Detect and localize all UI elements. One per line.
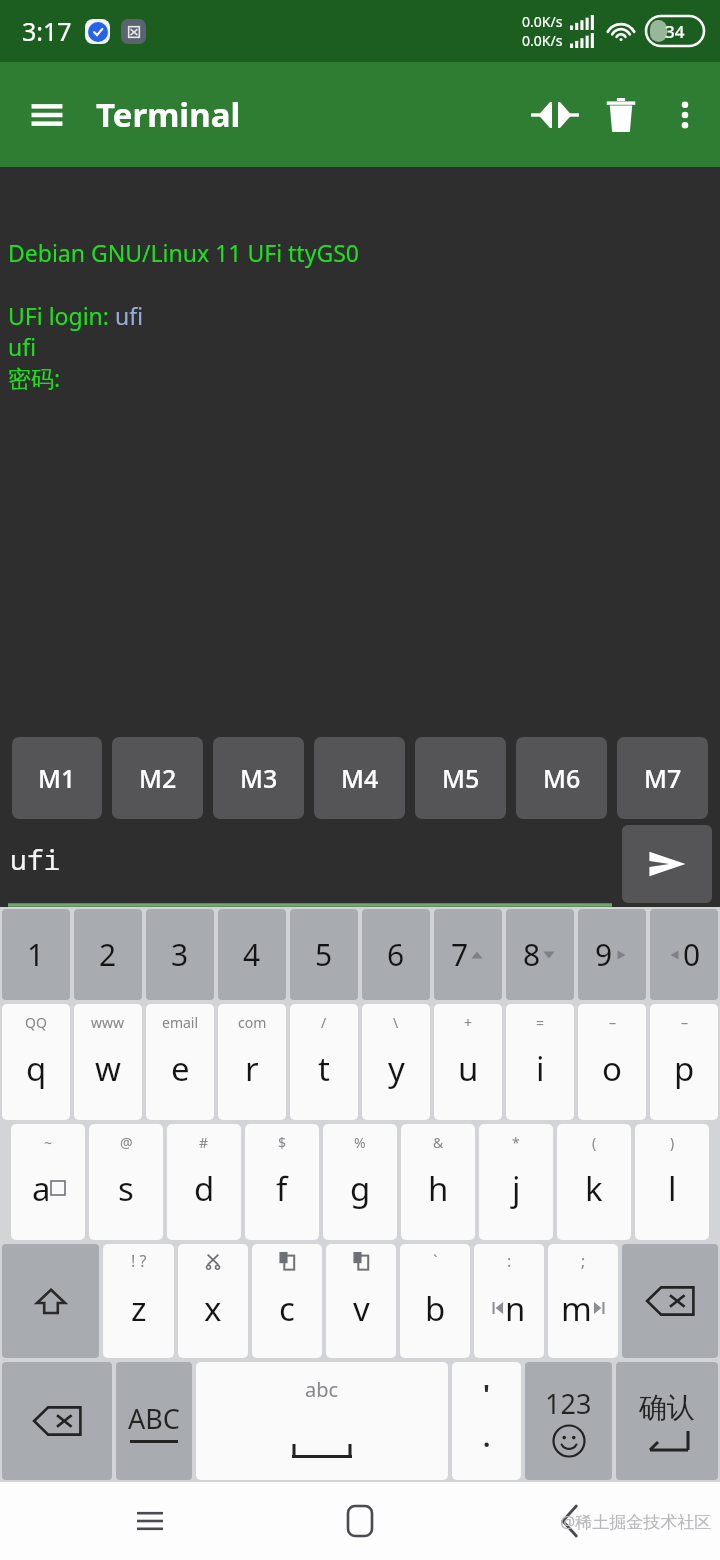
button[interactable]: ! ? <box>103 1244 174 1358</box>
button[interactable]: x <box>178 1244 248 1358</box>
staticText: 7 <box>451 934 469 975</box>
button[interactable]: 3 <box>146 909 214 1000</box>
button[interactable]: More options <box>654 82 716 148</box>
button[interactable]: % <box>323 1124 397 1240</box>
staticText: QQ <box>25 1013 47 1032</box>
button[interactable]: & <box>401 1124 475 1240</box>
button[interactable]: 6 <box>362 909 430 1000</box>
staticText: = <box>536 1013 545 1032</box>
staticText: w <box>95 1046 121 1091</box>
button[interactable]: Home <box>330 1491 390 1551</box>
button[interactable]: www <box>74 1004 142 1120</box>
staticText: o <box>602 1046 622 1091</box>
button[interactable]: : <box>474 1244 544 1358</box>
button[interactable]: ~ <box>11 1124 85 1240</box>
button[interactable]: Shift <box>2 1244 99 1358</box>
button[interactable]: Backspace <box>622 1244 718 1358</box>
button[interactable]: 2 <box>74 909 142 1000</box>
button[interactable]: 8 <box>506 909 574 1000</box>
staticText: com <box>238 1013 267 1032</box>
button[interactable]: M7 <box>617 737 708 819</box>
button[interactable]: – <box>650 1004 718 1120</box>
button[interactable]: 1 <box>2 909 70 1000</box>
button[interactable]: ( <box>557 1124 631 1240</box>
button[interactable]: ABC <box>116 1362 192 1480</box>
button[interactable]: = <box>506 1004 574 1120</box>
button[interactable]: Recents <box>120 1491 180 1551</box>
staticText: n <box>505 1286 526 1331</box>
button[interactable]: c <box>252 1244 322 1358</box>
button[interactable]: Back <box>540 1491 600 1551</box>
button[interactable]: 9 <box>578 909 646 1000</box>
button[interactable]: ' <box>452 1362 521 1480</box>
staticText: ufi <box>8 331 37 362</box>
staticText: + <box>464 1013 473 1032</box>
button[interactable]: M4 <box>314 737 405 819</box>
staticText: ; <box>581 1250 586 1272</box>
button[interactable]: Clear <box>588 82 654 148</box>
button[interactable]: ) <box>635 1124 709 1240</box>
button[interactable]: # <box>167 1124 241 1240</box>
staticText: z <box>131 1286 147 1331</box>
button[interactable]: Menu <box>14 82 80 148</box>
button[interactable]: 4 <box>218 909 286 1000</box>
button[interactable]: QQ <box>2 1004 70 1120</box>
staticText: ABC <box>128 1400 180 1437</box>
button[interactable]: Delete <box>2 1362 112 1480</box>
button[interactable]: ufi <box>0 819 622 907</box>
button[interactable]: – <box>578 1004 646 1120</box>
button[interactable]: 确认 <box>616 1362 718 1480</box>
staticText: M7 <box>644 761 682 795</box>
button[interactable]: 7 <box>434 909 502 1000</box>
staticText: 3 <box>171 934 189 975</box>
staticText: % <box>354 1133 366 1152</box>
button[interactable]: v <box>326 1244 396 1358</box>
button[interactable]: \ <box>362 1004 430 1120</box>
staticText: l <box>668 1166 677 1211</box>
button[interactable]: $ <box>245 1124 319 1240</box>
staticText: # <box>199 1133 209 1152</box>
staticText: t <box>318 1046 330 1091</box>
staticText: – <box>609 1013 616 1032</box>
button[interactable]: / <box>290 1004 358 1120</box>
staticText: f <box>276 1166 288 1211</box>
staticText: i <box>536 1046 545 1091</box>
staticText: UFi login: <box>8 300 115 331</box>
staticText: Terminal <box>96 92 241 137</box>
staticText: 9 <box>595 934 613 975</box>
staticText: q <box>26 1046 47 1091</box>
button[interactable]: Connect <box>522 82 588 148</box>
button[interactable]: ; <box>548 1244 618 1358</box>
staticText: x <box>204 1286 222 1331</box>
button[interactable]: Numbers and emoji <box>525 1362 612 1480</box>
staticText: 3:17 <box>22 14 72 48</box>
button[interactable]: M5 <box>415 737 506 819</box>
button[interactable]: com <box>218 1004 286 1120</box>
button[interactable]: Send <box>622 825 712 903</box>
staticText: ' <box>483 1376 490 1411</box>
button[interactable]: + <box>434 1004 502 1120</box>
button[interactable]: @ <box>89 1124 163 1240</box>
staticText: www <box>91 1013 125 1032</box>
staticText: 0.0K/s <box>522 31 563 50</box>
button[interactable]: Space <box>196 1362 448 1480</box>
button[interactable]: 5 <box>290 909 358 1000</box>
staticText: 2 <box>99 934 117 975</box>
button[interactable]: 0 <box>650 909 718 1000</box>
button[interactable]: M1 <box>12 737 102 819</box>
staticText: s <box>118 1166 134 1211</box>
button[interactable]: M3 <box>213 737 304 819</box>
staticText: : <box>507 1250 512 1272</box>
staticText: 密码: <box>8 362 61 393</box>
button[interactable]: * <box>479 1124 553 1240</box>
button[interactable]: email <box>146 1004 214 1120</box>
staticText: k <box>585 1166 603 1211</box>
staticText: 0 <box>683 934 701 975</box>
staticText: a <box>32 1166 51 1211</box>
staticText: @稀土掘金技术社区 <box>560 1510 712 1533</box>
button[interactable]: M2 <box>112 737 203 819</box>
staticText: u <box>458 1046 479 1091</box>
button[interactable]: M6 <box>516 737 607 819</box>
staticText: / <box>321 1013 327 1032</box>
button[interactable]: ` <box>400 1244 470 1358</box>
